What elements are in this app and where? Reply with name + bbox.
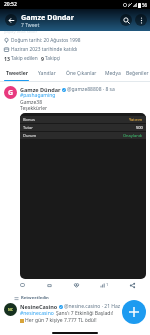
button[interactable]: Like [73, 282, 80, 289]
staticText: Öne Çıkanlar [66, 70, 97, 77]
button[interactable]: Reply [19, 282, 26, 289]
staticText: @gamze88808 · 8 sa [67, 86, 115, 93]
button[interactable]: Compose Tweet [122, 300, 146, 324]
button[interactable]: Yanıtlar [32, 70, 61, 81]
staticText: Yatırım [129, 117, 143, 122]
button[interactable]: 1 [100, 282, 109, 288]
staticText: @nesine.casino · 21 Haz [64, 303, 121, 310]
staticText: #nesinecasino [20, 310, 56, 317]
staticText: Doğum tarihi: 20 Ağustos 1998 [11, 37, 81, 44]
staticText: Bonus [23, 117, 35, 122]
staticText: Haziran 2023 tarihinde katıldı [11, 46, 78, 53]
staticText: Takip edilen [11, 55, 38, 62]
staticText: 13 [4, 55, 10, 62]
button[interactable]: Retweet [46, 282, 53, 289]
staticText: Tweetler [6, 70, 28, 77]
staticText: 56 [142, 2, 148, 8]
staticText: NesineCasino [20, 303, 58, 310]
button[interactable]: Medya [101, 70, 125, 81]
staticText: Durum [23, 133, 37, 138]
staticText: Gamze38 [20, 99, 43, 106]
button[interactable]: Search [120, 14, 132, 26]
staticText: Şans'ı 7 Etkinliği Başladı! [56, 310, 114, 317]
staticText: 20:52 [4, 1, 17, 8]
button[interactable]: Share [129, 282, 136, 289]
staticText: 500 [136, 125, 143, 130]
staticText: Takipçi [45, 55, 61, 62]
staticText: NC [8, 307, 14, 312]
staticText: Onaylandı [123, 133, 143, 138]
button[interactable]: Beğeniler [125, 70, 150, 81]
staticText: Her gün 7 kişiye 7.777 TL ödül! [25, 317, 97, 324]
staticText: Tutar [23, 125, 33, 130]
staticText: G [8, 88, 14, 98]
button[interactable]: More options [135, 14, 147, 26]
staticText: yapay zeka sever [4, 29, 38, 35]
staticText: Gamze Dündar [20, 86, 61, 93]
button[interactable]: Tweet image [20, 113, 146, 279]
staticText: Gamze Dündar [21, 12, 74, 22]
staticText: Beğeniler [126, 70, 149, 77]
button[interactable]: Öne Çıkanlar [61, 70, 101, 81]
staticText: 9 [41, 55, 44, 62]
staticText: Retweetledin [21, 295, 49, 301]
staticText: 1 [106, 282, 109, 288]
staticText: 7 Tweet [21, 22, 40, 29]
staticText: Medya [105, 70, 121, 77]
staticText: #pashagaming [20, 92, 56, 99]
button[interactable]: Tweetler [0, 70, 32, 81]
staticText: Yanıtlar [38, 70, 56, 77]
button[interactable]: Back [5, 14, 17, 26]
staticText: Teşekkürler [20, 105, 48, 112]
